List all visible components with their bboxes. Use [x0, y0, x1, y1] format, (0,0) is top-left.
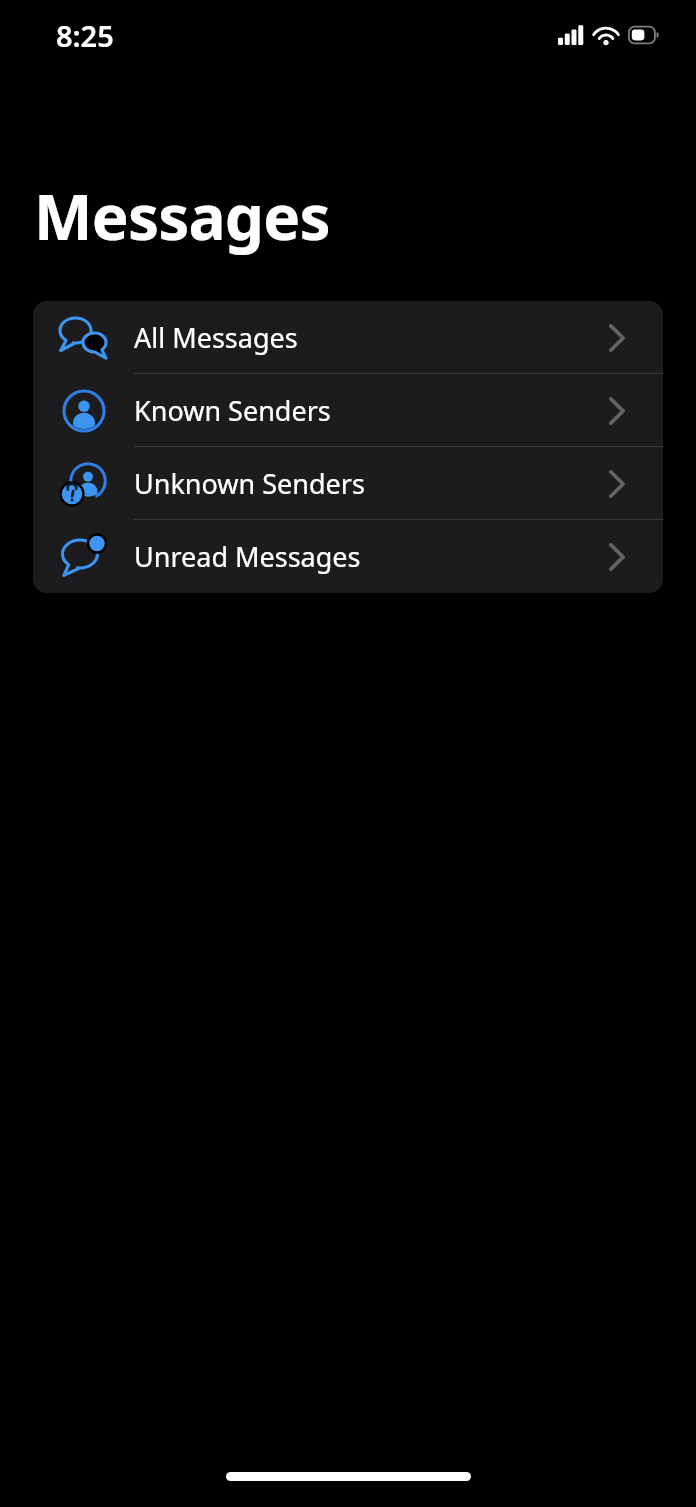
staticText: Unknown Senders: [134, 465, 365, 502]
staticText: All Messages: [134, 319, 298, 356]
staticText: Known Senders: [134, 392, 331, 429]
staticText: Messages: [34, 174, 330, 258]
staticText: Unread Messages: [134, 538, 361, 575]
button[interactable]: Unread Messages: [33, 520, 663, 593]
staticText: 8:25: [56, 16, 114, 55]
button[interactable]: Unknown Senders: [33, 447, 663, 520]
button[interactable]: All Messages: [33, 301, 663, 374]
button[interactable]: Known Senders: [33, 374, 663, 447]
